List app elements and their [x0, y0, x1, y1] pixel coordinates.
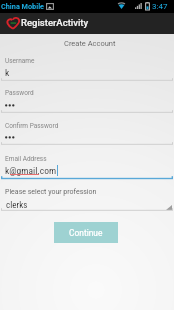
staticText: clerks	[6, 200, 28, 211]
staticText: Please select your profession	[5, 188, 97, 196]
staticText: k	[5, 67, 10, 78]
staticText: 3:47	[152, 2, 168, 11]
staticText: RegisterActivity	[21, 17, 89, 28]
staticText: China Mobile	[1, 2, 45, 11]
staticText: Password	[5, 89, 34, 97]
staticText: Create Account	[64, 39, 116, 48]
button[interactable]: App logo	[6, 17, 20, 29]
button[interactable]: Please select your profession	[0, 184, 174, 211]
button[interactable]: Email Address	[0, 151, 174, 180]
staticText: k@gmail.com	[5, 165, 57, 176]
staticText: Continue	[69, 228, 103, 238]
button[interactable]: Username	[0, 53, 174, 81]
button[interactable]: Confirm Password	[0, 118, 174, 145]
staticText: Email Address	[5, 155, 47, 163]
staticText: Username	[5, 57, 35, 65]
button[interactable]: Continue	[54, 222, 118, 243]
staticText: Confirm Password	[5, 122, 59, 130]
button[interactable]: Password	[0, 85, 174, 113]
